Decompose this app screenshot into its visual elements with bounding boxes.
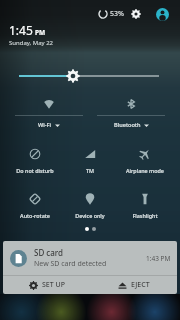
button[interactable]: Settings [129, 7, 143, 21]
staticText: Device only [75, 212, 105, 219]
button[interactable]: Auto-rotate [8, 193, 62, 224]
button[interactable]: Wi-Fi [8, 116, 90, 134]
button[interactable]: Bluetooth [90, 116, 172, 134]
button[interactable]: Device only [62, 193, 117, 224]
button[interactable]: EJECT [90, 276, 177, 294]
staticText: New SD card detected [34, 259, 107, 269]
staticText: SD card [34, 247, 64, 258]
staticText: Sunday, May 22 [9, 39, 54, 47]
staticText: Do not disturb [16, 167, 54, 174]
button[interactable]: Bluetooth [90, 92, 172, 115]
staticText: 1:45 [9, 22, 33, 38]
button[interactable]: Flashlight [117, 193, 172, 224]
staticText: TM [86, 167, 94, 174]
staticText: Bluetooth [114, 121, 141, 129]
button[interactable]: Airplane mode [117, 148, 172, 179]
button[interactable]: TM [62, 148, 117, 179]
staticText: Wi-Fi [38, 121, 52, 129]
button[interactable]: Brightness [0, 64, 180, 88]
button[interactable]: SD card [3, 241, 177, 275]
staticText: PM [35, 28, 46, 37]
button[interactable]: User profile [154, 6, 170, 22]
button[interactable]: SET UP [3, 276, 90, 294]
staticText: Flashlight [132, 212, 158, 219]
button[interactable]: Do not disturb [8, 148, 62, 179]
staticText: Airplane mode [126, 167, 164, 174]
button[interactable]: Wi-Fi [8, 92, 90, 115]
staticText: 53% [110, 9, 124, 19]
staticText: 1:43 PM [146, 254, 171, 263]
button[interactable]: 1:45 [9, 22, 58, 49]
staticText: EJECT [131, 280, 150, 290]
staticText: SET UP [42, 280, 65, 290]
staticText: Auto-rotate [20, 212, 50, 219]
